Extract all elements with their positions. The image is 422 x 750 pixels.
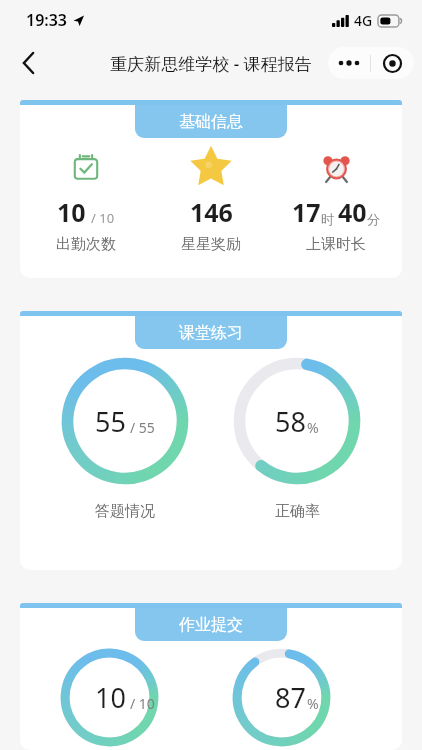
staticText: % xyxy=(307,418,319,437)
staticText: 课堂练习 xyxy=(179,323,243,343)
staticText: / 10 xyxy=(91,209,115,227)
button[interactable]: 作业提交 xyxy=(20,603,402,750)
staticText: / 55 xyxy=(130,418,155,437)
staticText: 出勤次数 xyxy=(56,235,116,254)
staticText: 146 xyxy=(190,195,233,229)
staticText: 时 xyxy=(321,211,334,227)
staticText: 10 xyxy=(95,679,126,716)
staticText: 分 xyxy=(367,211,380,227)
staticText: 正确率 xyxy=(275,502,320,521)
button[interactable]: 胶囊菜单 xyxy=(371,47,414,79)
button[interactable]: 课堂练习 xyxy=(20,311,402,570)
staticText: 重庆新思维学校 - 课程报告 xyxy=(110,52,312,75)
staticText: 星星奖励 xyxy=(181,235,241,254)
button[interactable]: 返回 xyxy=(8,43,48,83)
staticText: 40 xyxy=(338,195,367,229)
staticText: 87 xyxy=(275,679,306,716)
staticText: 作业提交 xyxy=(179,615,243,635)
staticText: 19:33 xyxy=(26,9,68,31)
staticText: 答题情况 xyxy=(95,502,155,521)
button[interactable]: 更多 xyxy=(328,47,370,79)
staticText: 58 xyxy=(275,403,306,440)
staticText: 17 xyxy=(292,195,321,229)
staticText: 55 xyxy=(95,403,126,440)
staticText: 基础信息 xyxy=(179,112,243,132)
button[interactable]: 基础信息 xyxy=(20,100,402,278)
staticText: % xyxy=(307,694,319,713)
staticText: 4G xyxy=(354,11,373,30)
staticText: 上课时长 xyxy=(306,235,366,254)
staticText: 10 xyxy=(57,195,86,229)
staticText: / 10 xyxy=(130,694,155,713)
